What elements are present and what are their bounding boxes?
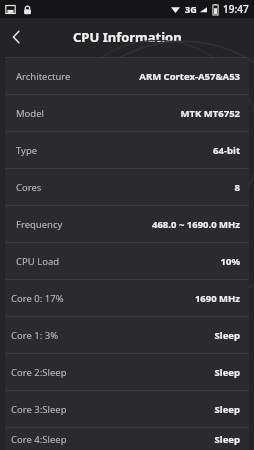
- staticText: Sleep: [214, 366, 240, 379]
- button[interactable]: Core 4:Sleep: [5, 428, 249, 450]
- staticText: Sleep: [214, 403, 240, 416]
- button[interactable]: Cores: [5, 169, 249, 205]
- staticText: Sleep: [214, 329, 240, 342]
- staticText: Core 3:Sleep: [11, 403, 67, 416]
- staticText: Type: [16, 144, 38, 157]
- button[interactable]: Core 2:Sleep: [5, 354, 249, 390]
- staticText: 1690 MHz: [194, 292, 240, 305]
- button[interactable]: Core 1: 3%: [5, 317, 249, 353]
- staticText: 10%: [220, 255, 240, 268]
- staticText: CPU Load: [16, 255, 60, 268]
- staticText: Frequency: [16, 218, 63, 231]
- staticText: Architecture: [16, 70, 71, 83]
- button[interactable]: Frequency: [5, 206, 249, 242]
- staticText: Cores: [16, 181, 42, 194]
- staticText: Sleep: [214, 433, 240, 446]
- button[interactable]: Core 0: 17%: [5, 280, 249, 316]
- button[interactable]: CPU Load: [5, 243, 249, 279]
- staticText: 468.0 ~ 1690.0 MHz: [152, 218, 240, 231]
- staticText: Core 4:Sleep: [11, 433, 67, 446]
- staticText: 3G: [185, 3, 197, 15]
- staticText: MTK MT6752: [180, 107, 240, 120]
- button[interactable]: Back: [0, 20, 34, 54]
- button[interactable]: Architecture: [5, 58, 249, 94]
- staticText: Core 1: 3%: [11, 329, 59, 342]
- staticText: ARM Cortex-A57&A53: [139, 70, 240, 83]
- staticText: 8: [234, 181, 240, 194]
- button[interactable]: Type: [5, 132, 249, 168]
- staticText: 64-bit: [213, 144, 240, 157]
- button[interactable]: Core 3:Sleep: [5, 391, 249, 427]
- staticText: Core 2:Sleep: [11, 366, 67, 379]
- button[interactable]: Model: [5, 95, 249, 131]
- staticText: Model: [16, 107, 45, 120]
- staticText: Core 0: 17%: [11, 292, 64, 305]
- staticText: CPU Information: [73, 28, 182, 46]
- staticText: 19:47: [223, 2, 249, 16]
